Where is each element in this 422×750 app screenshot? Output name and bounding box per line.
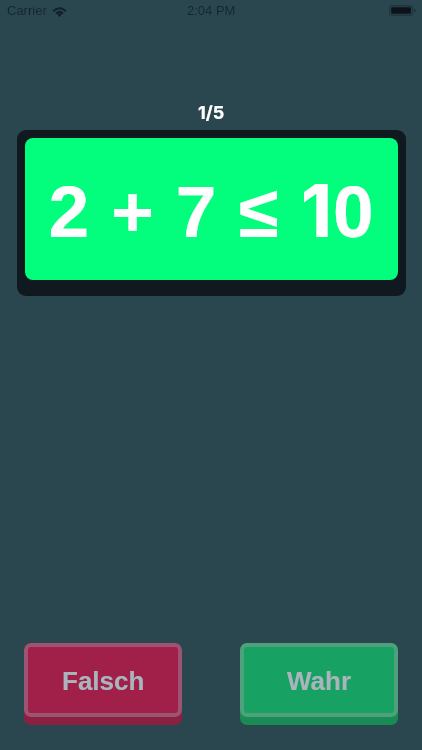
button[interactable]: Wahr [240,643,398,725]
staticText: Falsch [62,666,145,695]
staticText: Wahr [287,666,352,695]
staticText: 2:04 PM [187,3,236,18]
other: Battery [389,5,416,16]
staticText: 2 + 7 ≤ 10 [48,166,375,254]
button[interactable]: Falsch [24,643,182,725]
other: Wi-Fi [52,5,67,16]
staticText: 1/5 [198,102,225,124]
staticText: Carrier [7,3,47,18]
